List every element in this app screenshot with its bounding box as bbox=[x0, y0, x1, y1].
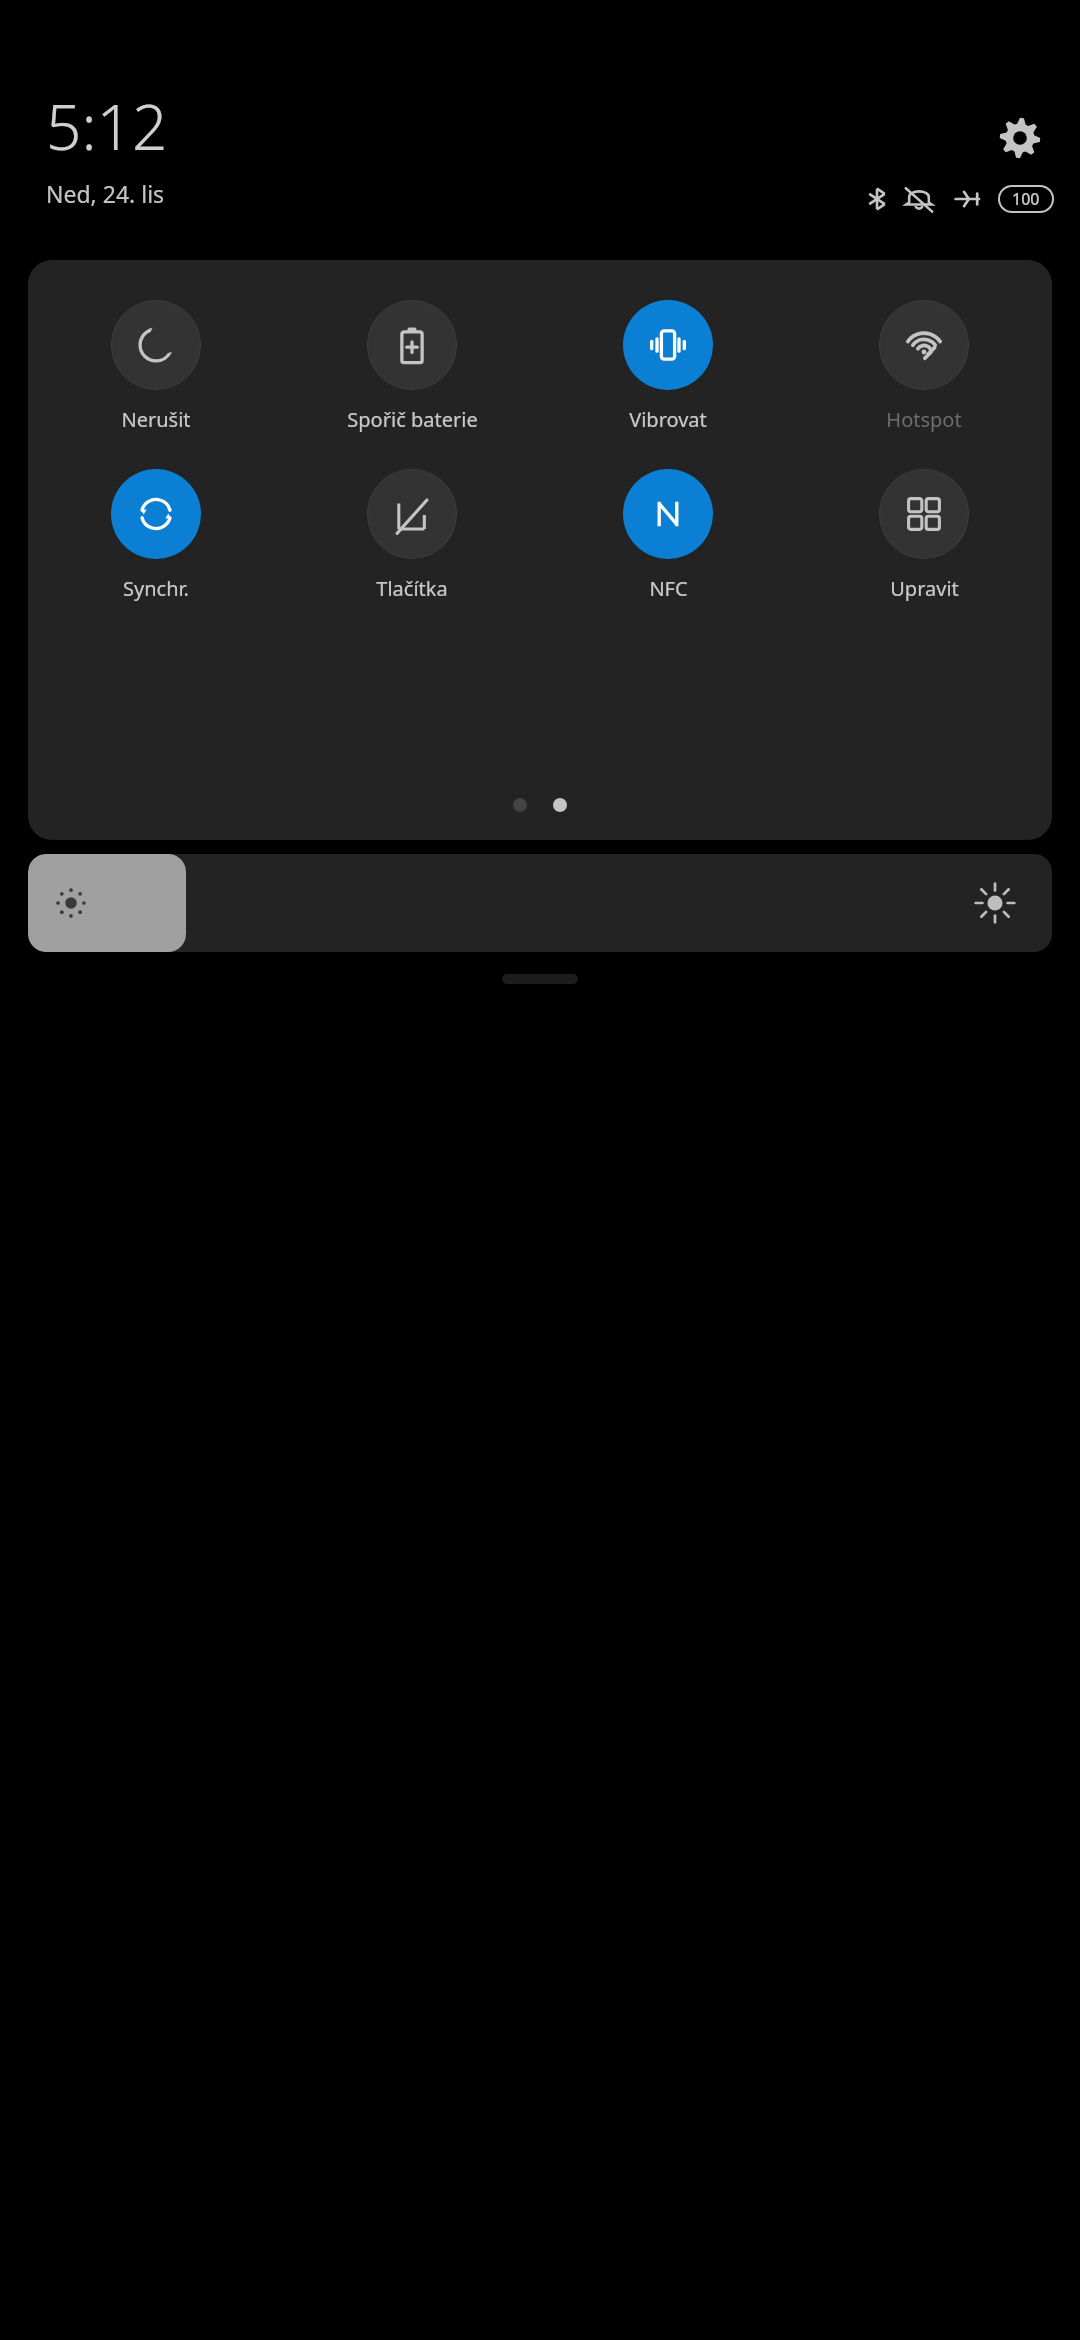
button[interactable]: Spořič baterie bbox=[284, 296, 540, 437]
staticText: Upravit bbox=[890, 575, 959, 602]
staticText: Nerušit bbox=[121, 406, 191, 433]
button[interactable]: Settings bbox=[988, 106, 1052, 170]
staticText: Vibrovat bbox=[629, 406, 707, 433]
button[interactable]: Vibrovat bbox=[540, 296, 796, 437]
button[interactable]: Brightness bbox=[28, 854, 1052, 952]
button[interactable]: NFC bbox=[540, 465, 796, 606]
staticText: Hotspot bbox=[886, 406, 962, 433]
staticText: 100 bbox=[1012, 188, 1040, 210]
button[interactable]: Hotspot bbox=[796, 296, 1052, 437]
staticText: NFC bbox=[649, 575, 688, 602]
staticText: Tlačítka bbox=[376, 575, 448, 602]
staticText: Spořič baterie bbox=[347, 406, 478, 433]
staticText: Synchr. bbox=[123, 575, 189, 602]
button[interactable]: Synchr. bbox=[28, 465, 284, 606]
staticText: 5:12 bbox=[46, 84, 168, 168]
button[interactable]: Nerušit bbox=[28, 296, 284, 437]
staticText: Ned, 24. lis bbox=[46, 178, 165, 209]
button[interactable]: Tlačítka bbox=[284, 465, 540, 606]
button[interactable]: Upravit bbox=[796, 465, 1052, 606]
